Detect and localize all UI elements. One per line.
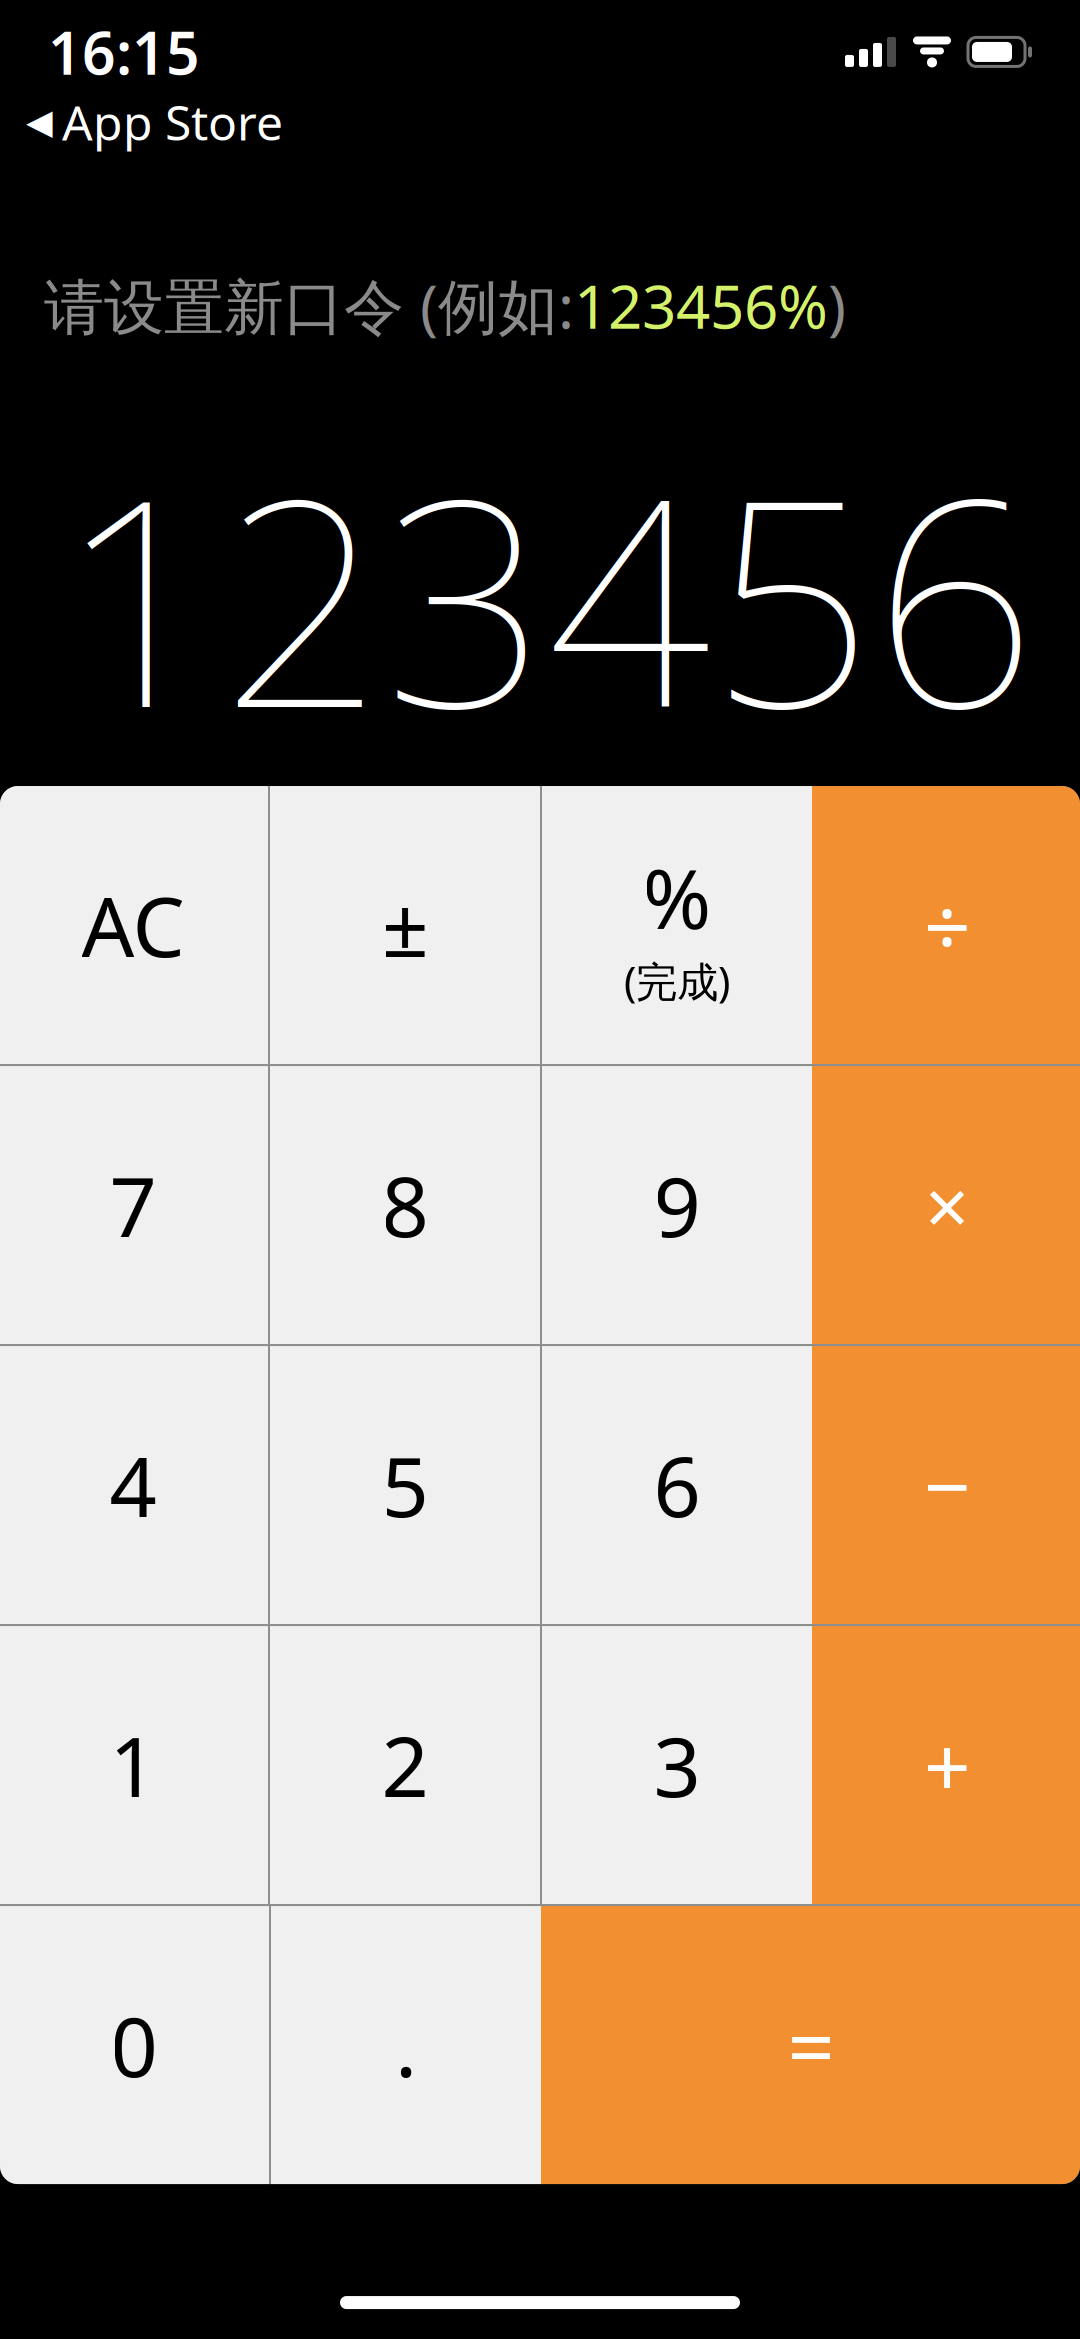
staticText: App Store <box>62 90 283 154</box>
staticText: AC <box>81 870 184 980</box>
button[interactable]: Add <box>812 1626 1080 1904</box>
button[interactable]: 7 <box>0 1066 268 1344</box>
staticText: × <box>925 1154 969 1256</box>
staticText: + <box>923 1710 970 1820</box>
button[interactable]: 8 <box>270 1066 540 1344</box>
staticText: ÷ <box>923 870 970 980</box>
staticText: 2 <box>381 1710 428 1820</box>
staticText: 4 <box>109 1430 156 1540</box>
button[interactable]: Subtract <box>812 1346 1080 1624</box>
staticText: ) <box>828 266 846 345</box>
staticText: ± <box>381 870 428 980</box>
staticText: . <box>395 1990 417 2100</box>
button[interactable]: % <box>542 786 812 1064</box>
button[interactable]: ◀ <box>0 90 1080 154</box>
button[interactable]: 0 <box>0 1906 269 2184</box>
button[interactable]: . <box>271 1906 541 2184</box>
staticText: 6 <box>653 1430 700 1540</box>
staticText: 3 <box>653 1710 700 1820</box>
button[interactable]: 5 <box>270 1346 540 1624</box>
button[interactable]: 1 <box>0 1626 268 1904</box>
button[interactable]: AC <box>0 786 268 1064</box>
staticText: 123456 <box>58 405 1036 786</box>
staticText: (完成) <box>624 953 730 1008</box>
button[interactable]: 9 <box>542 1066 812 1344</box>
staticText: ◀ <box>26 102 53 141</box>
staticText: 1 <box>109 1710 156 1820</box>
staticText: 123456% <box>574 266 828 345</box>
staticText: = <box>787 1990 834 2100</box>
button[interactable]: Multiply <box>812 1066 1080 1344</box>
staticText: 5 <box>381 1430 428 1540</box>
button[interactable]: 3 <box>542 1626 812 1904</box>
staticText: 请设置新口令 (例如: <box>44 266 574 345</box>
button[interactable]: 2 <box>270 1626 540 1904</box>
staticText: 9 <box>653 1150 700 1260</box>
staticText: 16:15 <box>48 13 200 91</box>
button[interactable]: ± <box>270 786 540 1064</box>
button[interactable]: 4 <box>0 1346 268 1624</box>
button[interactable]: Equals <box>541 1906 1080 2184</box>
button[interactable]: 6 <box>542 1346 812 1624</box>
staticText: − <box>923 1430 970 1540</box>
staticText: % <box>642 842 711 951</box>
staticText: 7 <box>109 1150 156 1260</box>
button[interactable]: Divide <box>812 786 1080 1064</box>
staticText: 8 <box>381 1150 428 1260</box>
staticText: 0 <box>110 1990 157 2100</box>
